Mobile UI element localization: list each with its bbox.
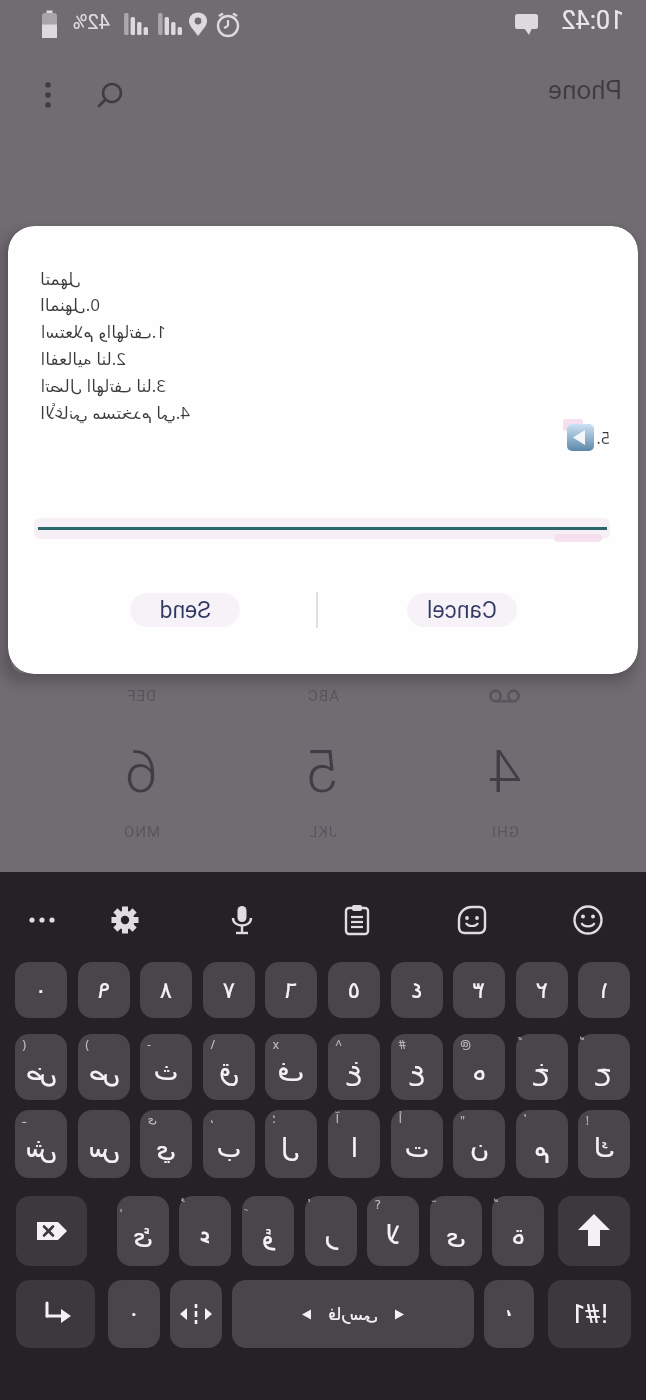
staticText: 4 [488, 736, 522, 806]
button[interactable] [22, 900, 62, 940]
staticText: - [147, 1036, 151, 1052]
button[interactable] [568, 900, 608, 940]
staticText: خ [533, 1056, 550, 1086]
button[interactable]: ٥ [328, 962, 380, 1018]
button[interactable]: ث [140, 1034, 192, 1100]
staticText: ع [409, 1056, 425, 1086]
button[interactable]: ف [265, 1034, 317, 1100]
button[interactable]: ٣ [453, 962, 505, 1018]
button[interactable]: ٠ [15, 962, 67, 1018]
button[interactable] [452, 900, 492, 940]
button[interactable]: ى [430, 1196, 482, 1266]
staticText: 0.المنهل [40, 293, 100, 316]
button[interactable]: غ [328, 1034, 380, 1100]
button[interactable]: ئ [117, 1196, 169, 1266]
button[interactable]: ٨ [140, 962, 192, 1018]
staticText: ن [469, 1133, 489, 1163]
staticText: JKL [308, 823, 337, 841]
staticText: فارسى [328, 1304, 378, 1324]
button[interactable]: ق [203, 1034, 255, 1100]
staticText: " [460, 1112, 465, 1128]
staticText: ش [25, 1133, 57, 1163]
staticText: ٣ [472, 977, 485, 1004]
staticText: GHI [491, 823, 519, 841]
staticText: م [533, 1133, 550, 1163]
button[interactable]: س [78, 1110, 130, 1178]
staticText: ـ [22, 1112, 26, 1126]
button[interactable]: ٢ [516, 962, 568, 1018]
button[interactable]: ؤ [242, 1196, 294, 1266]
button[interactable]: ش [15, 1110, 67, 1178]
button[interactable]: ض [15, 1034, 67, 1100]
staticText: ه [472, 1056, 486, 1086]
button[interactable]: ٩ [78, 962, 130, 1018]
button[interactable]: ح [578, 1034, 630, 1100]
staticText: ك [593, 1133, 615, 1163]
button[interactable]: م [516, 1110, 568, 1178]
button[interactable]: ، [484, 1280, 534, 1348]
staticText: ٦ [284, 977, 297, 1004]
staticText: ، [210, 1112, 214, 1126]
button[interactable] [105, 900, 145, 940]
staticText: ث [153, 1056, 178, 1086]
button[interactable] [16, 1196, 87, 1266]
button[interactable]: ء [179, 1196, 231, 1266]
button[interactable]: فارسى [232, 1280, 474, 1348]
staticText: 5 [306, 736, 340, 806]
staticText: Send [159, 597, 211, 624]
staticText: ؛ [272, 1112, 276, 1126]
button[interactable]: ٤ [391, 962, 443, 1018]
button[interactable]: ب [203, 1110, 255, 1178]
button[interactable] [26, 76, 66, 116]
button[interactable] [337, 900, 377, 940]
button[interactable]: ن [453, 1110, 505, 1178]
button[interactable]: ص [78, 1034, 130, 1100]
staticText: أ [398, 1112, 402, 1126]
staticText: ٧ [222, 977, 235, 1004]
button[interactable]: ا [328, 1110, 380, 1178]
staticText: @ [460, 1036, 471, 1052]
staticText: ^ [335, 1036, 342, 1052]
staticText: ل [281, 1133, 300, 1163]
button[interactable]: ر [305, 1196, 357, 1266]
button[interactable] [558, 1196, 630, 1266]
button[interactable]: خ [516, 1034, 568, 1100]
button[interactable]: Cancel [392, 586, 532, 634]
button[interactable] [16, 1280, 95, 1348]
button[interactable]: . [108, 1280, 160, 1348]
staticText: ؤ [261, 1220, 274, 1250]
staticText: ء [198, 1220, 211, 1250]
staticText: 6 [124, 736, 158, 806]
staticText: ٢ [535, 977, 548, 1004]
staticText: ٬ [523, 1112, 527, 1126]
staticText: ص [88, 1056, 120, 1086]
staticText: ي [155, 1133, 176, 1163]
staticText: غ [346, 1056, 362, 1086]
staticText: ح [595, 1056, 612, 1086]
button[interactable]: ي [140, 1110, 192, 1178]
button[interactable] [90, 76, 130, 116]
button[interactable] [222, 900, 262, 940]
staticText: Cancel [426, 597, 497, 624]
button[interactable]: ع [391, 1034, 443, 1100]
button[interactable]: !#1 [548, 1280, 631, 1348]
button[interactable]: ١ [578, 962, 630, 1018]
button[interactable]: ه [453, 1034, 505, 1100]
button[interactable]: ٦ [265, 962, 317, 1018]
button[interactable]: لا [367, 1196, 419, 1266]
button[interactable]: ل [265, 1110, 317, 1178]
staticText: ر [324, 1220, 337, 1250]
button[interactable]: ة [492, 1196, 544, 1266]
staticText: ؟ [374, 1198, 381, 1212]
staticText: 42% [72, 10, 110, 33]
staticText: س [88, 1133, 120, 1163]
staticText: ( [22, 1036, 26, 1052]
button[interactable]: Send [115, 586, 255, 634]
staticText: 4.الأغاني مستخدم لي [40, 401, 190, 424]
staticText: \ [210, 1036, 215, 1052]
button[interactable]: ك [578, 1110, 630, 1178]
staticText: ABC [307, 687, 339, 705]
button[interactable] [170, 1280, 222, 1348]
button[interactable]: ٧ [203, 962, 255, 1018]
button[interactable]: ت [391, 1110, 443, 1178]
